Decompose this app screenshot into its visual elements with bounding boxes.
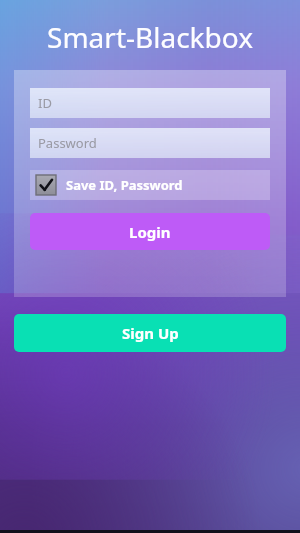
button[interactable]: ID <box>30 88 270 118</box>
button[interactable]: Password <box>30 128 270 158</box>
staticText: Save ID, Password <box>66 176 183 194</box>
staticText: Login <box>129 222 171 242</box>
staticText: Password <box>38 134 97 152</box>
button[interactable]: Save ID and Password checkbox, checked <box>30 170 270 200</box>
button[interactable]: Sign Up <box>14 314 286 352</box>
other: Save ID and Password checkbox, checked <box>36 175 56 195</box>
staticText: Smart-Blackbox <box>47 18 253 56</box>
button[interactable]: Login <box>30 213 270 250</box>
staticText: ID <box>38 94 52 112</box>
staticText: Sign Up <box>122 323 179 343</box>
